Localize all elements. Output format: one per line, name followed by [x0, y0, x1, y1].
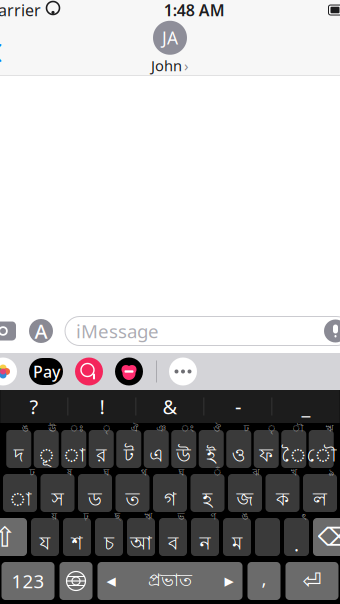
button[interactable]: ঞ — [144, 430, 169, 468]
staticText: প্রভাত — [148, 569, 192, 593]
staticText: ই — [206, 443, 216, 469]
button[interactable]: Camera — [0, 319, 17, 343]
button[interactable]: ঘ — [153, 474, 187, 512]
staticText: ঊ — [48, 422, 56, 435]
staticText: ঌ — [328, 466, 334, 479]
staticText: & — [162, 393, 177, 420]
button[interactable]: ঝ — [228, 474, 262, 512]
staticText: ম — [232, 531, 242, 557]
button[interactable]: John — [151, 56, 189, 75]
staticText: ড — [88, 487, 102, 513]
button[interactable]: Apple Pay — [29, 358, 63, 385]
staticText: দ — [14, 443, 24, 469]
staticText: হ — [202, 487, 212, 513]
button[interactable]: ঢ় — [63, 518, 91, 556]
staticText: ঢ — [244, 422, 249, 435]
staticText: ভ — [177, 510, 184, 523]
button[interactable]: Shift — [0, 518, 27, 556]
button[interactable]: ঊ — [34, 430, 59, 468]
button[interactable]: Return — [285, 562, 338, 600]
staticText: ⌫ — [317, 523, 340, 551]
staticText: গ — [164, 487, 176, 513]
staticText: ঞ — [156, 422, 166, 435]
button[interactable]: Images — [75, 357, 103, 385]
staticText: ৌ — [306, 443, 336, 469]
button[interactable]: ঘ — [78, 474, 112, 512]
staticText: ষ — [67, 466, 72, 479]
button[interactable]: John contact photo — [153, 21, 187, 55]
button[interactable]: ঃ — [61, 430, 86, 468]
button[interactable]: ৃ — [254, 430, 279, 468]
staticText: ন — [199, 531, 210, 557]
button[interactable]: iMessage — [65, 316, 340, 345]
staticText: JA — [162, 26, 178, 49]
button[interactable]: ছ — [95, 518, 123, 556]
button[interactable]: খ — [265, 474, 299, 512]
button[interactable]: ! — [68, 390, 135, 423]
button[interactable]: Digital Touch — [115, 357, 143, 385]
staticText: › — [184, 56, 189, 75]
button[interactable]: Space — [97, 562, 242, 600]
button[interactable]: ? — [0, 390, 67, 423]
staticText: ▶ — [224, 574, 233, 588]
staticText: খ — [291, 466, 297, 479]
staticText: ⏎ — [302, 568, 321, 594]
button[interactable]: _ — [272, 390, 339, 423]
button[interactable]: Blank key — [255, 518, 280, 556]
staticText: iMessage — [76, 319, 159, 343]
staticText: ঋ — [144, 510, 152, 523]
button[interactable]: ঋ — [309, 430, 334, 468]
button[interactable]: App Store — [28, 318, 54, 344]
button[interactable]: ভ — [159, 518, 187, 556]
staticText: জ — [236, 487, 253, 513]
button[interactable]: ঢ — [226, 430, 251, 468]
staticText: ট — [124, 443, 134, 469]
staticText: ঋ — [326, 422, 334, 435]
staticText: ঁ — [213, 466, 222, 479]
staticText: য — [39, 531, 50, 557]
staticText: এ — [149, 443, 163, 469]
staticText: ছ — [114, 510, 120, 523]
staticText: ঝ — [252, 466, 259, 479]
button[interactable]: Comma — [247, 562, 280, 600]
button[interactable]: Photos — [0, 357, 17, 385]
button[interactable]: ৗ — [281, 430, 306, 468]
button[interactable]: & — [136, 390, 203, 423]
staticText: ং — [181, 422, 194, 435]
staticText: ◀ — [106, 574, 115, 588]
button[interactable]: ষ — [40, 474, 74, 512]
button[interactable]: 123 — [1, 562, 54, 600]
button[interactable]: ঌ — [303, 474, 337, 512]
staticText: Carrier — [0, 0, 41, 21]
staticText: ৈ — [281, 443, 306, 469]
button[interactable]: Delete — [313, 518, 340, 556]
staticText: . — [294, 532, 299, 557]
button[interactable]: ঢ — [3, 474, 37, 512]
button[interactable]: ঁ — [190, 474, 224, 512]
staticText: ৃ — [102, 422, 111, 435]
button[interactable]: ঋ — [127, 518, 155, 556]
staticText: আ — [130, 531, 152, 557]
staticText: ঘ — [178, 466, 184, 479]
staticText: শ — [71, 531, 82, 557]
button[interactable]: ণ — [191, 518, 219, 556]
button[interactable]: ৎ — [284, 518, 309, 556]
staticText: _ — [301, 393, 310, 420]
staticText: ? — [29, 393, 38, 420]
button[interactable]: ঐ — [116, 430, 141, 468]
button[interactable]: Next keyboard — [59, 562, 92, 600]
button[interactable]: ঔ — [199, 430, 224, 468]
button[interactable]: থ — [115, 474, 149, 512]
button[interactable]: ঙ — [223, 518, 251, 556]
staticText: র — [96, 443, 106, 469]
button[interactable]: Back — [0, 26, 15, 70]
button[interactable]: ঙ — [6, 430, 31, 468]
staticText: ও — [232, 443, 246, 469]
staticText: ঢ — [29, 466, 34, 479]
button[interactable]: ং — [171, 430, 196, 468]
button[interactable]: - — [204, 390, 271, 423]
button[interactable]: ৃ — [89, 430, 114, 468]
staticText: 1:48 AM — [164, 0, 225, 21]
button[interactable]: More apps — [169, 357, 197, 385]
button[interactable]: য় — [31, 518, 59, 556]
